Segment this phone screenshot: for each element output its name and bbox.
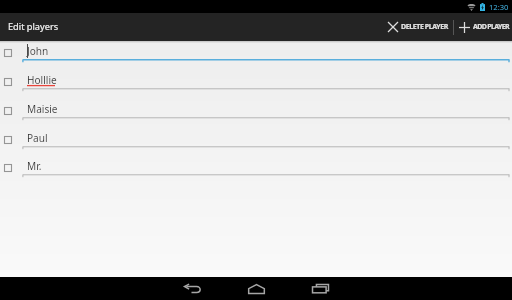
staticText: Maisie	[27, 102, 58, 116]
button[interactable]: Holllie	[0, 74, 512, 103]
button[interactable]: DELETE PLAYER	[376, 13, 453, 41]
button[interactable]: Recent apps	[312, 277, 329, 300]
button[interactable]: Maisie	[0, 103, 512, 132]
staticText: John	[27, 44, 49, 58]
staticText: ADD PLAYER	[473, 22, 509, 32]
button[interactable]: ADD PLAYER	[454, 13, 512, 41]
staticText: Edit players	[8, 20, 59, 33]
staticText: Paul	[27, 131, 48, 145]
staticText: Holllie	[27, 73, 57, 87]
staticText: Mr.	[27, 159, 42, 173]
staticText: DELETE PLAYER	[401, 22, 449, 32]
button[interactable]: Paul	[0, 132, 512, 161]
button[interactable]: Home	[248, 277, 265, 300]
button[interactable]: Back	[184, 277, 201, 300]
button[interactable]: John	[0, 45, 512, 74]
staticText: 12:30	[489, 2, 509, 12]
button[interactable]: Mr.	[0, 160, 512, 189]
